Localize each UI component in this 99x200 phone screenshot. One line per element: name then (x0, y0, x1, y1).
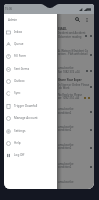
staticText: Queue (14, 42, 24, 46)
staticText: Inbox (14, 30, 23, 34)
button[interactable]: Inbox (4, 26, 57, 38)
staticText: Sent Items (14, 67, 30, 71)
button[interactable]: Log Off (4, 149, 57, 161)
staticText: Admin (8, 18, 18, 22)
staticText: EMAIL (58, 27, 67, 31)
staticText: In Store or Online Please (58, 83, 90, 87)
staticText: Sat 1082 374 +44 (58, 70, 80, 74)
staticText: Help (14, 141, 21, 145)
button[interactable]: Search (73, 15, 82, 24)
staticText: condition2 (58, 128, 72, 132)
staticText: unsubscribe (58, 66, 74, 70)
button[interactable]: Help (4, 137, 57, 149)
staticText: Manage Account (14, 116, 38, 120)
staticText: No Reply to: Please (58, 93, 83, 97)
staticText: condition2 (58, 165, 72, 169)
staticText: Settings (14, 129, 26, 133)
button[interactable]: Sent Items (4, 63, 57, 75)
button[interactable]: More options (82, 15, 91, 24)
button[interactable]: Fill Form (4, 50, 57, 62)
staticText: condition2 (58, 111, 72, 115)
button[interactable]: Trigger Downfall (4, 100, 57, 112)
staticText: unsubscribe (58, 143, 74, 147)
button[interactable]: Outbox (4, 75, 57, 87)
staticText: we 1082 374 +44 (58, 96, 80, 100)
staticText: Trigger Downfall (14, 104, 38, 108)
button[interactable]: Sync (4, 87, 57, 99)
staticText: unsubscribe (58, 125, 74, 129)
staticText: A. Watson @Incident Co (58, 49, 89, 53)
staticText: Share Your Exper (58, 78, 82, 82)
staticText: unsubscribe (58, 162, 74, 166)
staticText: Log Off (14, 153, 25, 157)
staticText: Outbox (14, 79, 25, 83)
button[interactable]: Manage Account (4, 112, 57, 124)
staticText: Sync (14, 91, 21, 95)
button[interactable]: Settings (4, 125, 57, 137)
staticText: Odometer reading (58, 35, 82, 39)
staticText: action - Plan with detail (58, 52, 88, 56)
staticText: condition2 (58, 146, 72, 150)
button[interactable]: Queue (4, 38, 57, 50)
staticText: Fill Form (14, 54, 27, 58)
staticText: Incident and Accident (58, 31, 86, 35)
staticText: unsubscribe (58, 180, 74, 184)
staticText: unsubscribe (58, 107, 74, 111)
staticText: 15:06 (5, 7, 13, 11)
staticText: Job Work (58, 86, 70, 90)
